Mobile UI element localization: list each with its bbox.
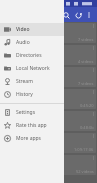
button[interactable]: Settings [0, 106, 64, 119]
button[interactable]: Stream [0, 75, 64, 88]
staticText: Settings [16, 109, 36, 116]
staticText: Audio [16, 39, 30, 46]
staticText: Local Network [16, 65, 50, 72]
button[interactable]: 1:09:17:06 [1, 133, 96, 153]
staticText: 7 videos [78, 81, 94, 86]
button[interactable]: Rate this app [0, 119, 64, 132]
button[interactable]: Audio [0, 36, 64, 49]
button[interactable]: More options [84, 10, 94, 20]
button[interactable]: Local Network [0, 62, 64, 75]
button[interactable]: Video [0, 23, 64, 36]
staticText: Stream [16, 78, 33, 85]
staticText: 0:48:0b [80, 125, 94, 130]
staticText: More apps [16, 135, 41, 142]
button[interactable]: History [0, 88, 64, 101]
button[interactable]: 7 videos [1, 23, 96, 43]
staticText: 0:45:20 [80, 103, 94, 108]
staticText: History [16, 91, 33, 98]
staticText: 7 videos [78, 37, 94, 42]
staticText: Directories [16, 52, 42, 59]
button[interactable]: Refresh [72, 9, 84, 21]
button[interactable]: 0:45:20 [1, 89, 96, 109]
button[interactable]: 7 videos [1, 67, 96, 87]
staticText: Rate this app [16, 122, 47, 129]
button[interactable]: More apps [0, 132, 64, 145]
button[interactable]: Search [60, 9, 72, 21]
button[interactable]: 0:48:0b [1, 111, 96, 131]
button[interactable]: 52 videos [1, 155, 96, 175]
button[interactable]: Directories [0, 49, 64, 62]
staticText: Video [16, 26, 30, 33]
staticText: 1:09:17:06 [74, 147, 94, 152]
staticText: 52 videos [76, 169, 94, 174]
button[interactable]: 4 videos [1, 45, 96, 65]
staticText: 4 videos [78, 59, 94, 64]
